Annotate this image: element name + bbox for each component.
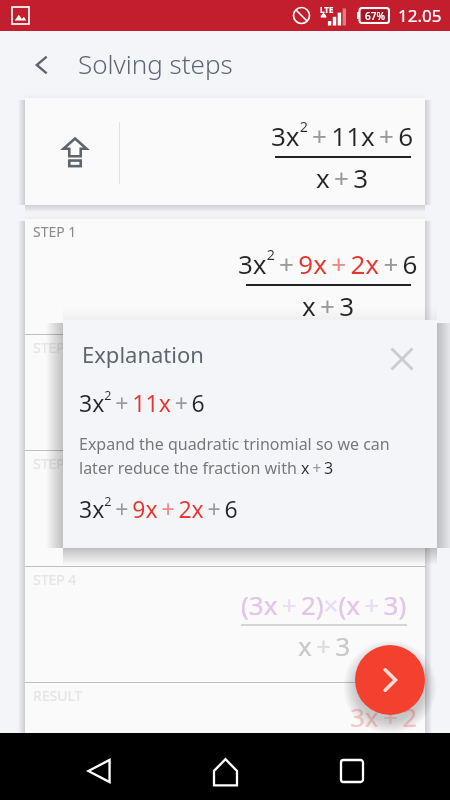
staticText: 3x2 + 9x + 2x + 6 <box>79 492 238 525</box>
staticText: 3x2 + 9x + 2x + 6 <box>238 245 418 282</box>
staticText: x + 3 <box>302 288 355 323</box>
staticText: STEP 2 <box>33 338 77 357</box>
button[interactable]: Next step <box>355 645 425 715</box>
staticText: Explanation <box>82 339 204 369</box>
staticText: Solving steps <box>78 46 233 81</box>
button[interactable]: Back <box>71 739 127 795</box>
staticText: STEP 1 <box>33 222 77 241</box>
staticText: Expand the quadratic trinomial so we can… <box>79 433 390 479</box>
staticText: x + 3 <box>298 628 351 663</box>
staticText: 3x2 + 11x + 6 <box>271 117 414 154</box>
staticText: (3x + 2)×(x + 3) <box>241 587 407 622</box>
button[interactable]: Share <box>25 98 425 205</box>
button[interactable]: Home <box>197 739 253 795</box>
staticText: 3x + 2 <box>350 699 418 734</box>
staticText: 67% <box>365 9 385 23</box>
staticText: STEP 4 <box>33 570 77 589</box>
button[interactable]: Recents <box>324 739 380 795</box>
button[interactable]: STEP 2 <box>25 335 425 450</box>
button[interactable]: Share <box>51 128 99 176</box>
button[interactable]: STEP 4 <box>25 567 425 682</box>
button[interactable]: STEP 3 <box>25 451 425 566</box>
staticText: x + 3 <box>316 160 369 195</box>
staticText: 3x2 + 11x + 6 <box>79 386 205 419</box>
staticText: 12.05 <box>398 4 442 27</box>
button[interactable]: STEP 1 <box>25 219 425 334</box>
button[interactable]: Close <box>379 336 425 382</box>
staticText: STEP 3 <box>33 454 77 473</box>
staticText: RESULT <box>33 686 83 705</box>
staticText: LTE <box>320 4 334 15</box>
button[interactable]: RESULT <box>25 683 425 733</box>
button[interactable]: Back <box>16 39 68 91</box>
